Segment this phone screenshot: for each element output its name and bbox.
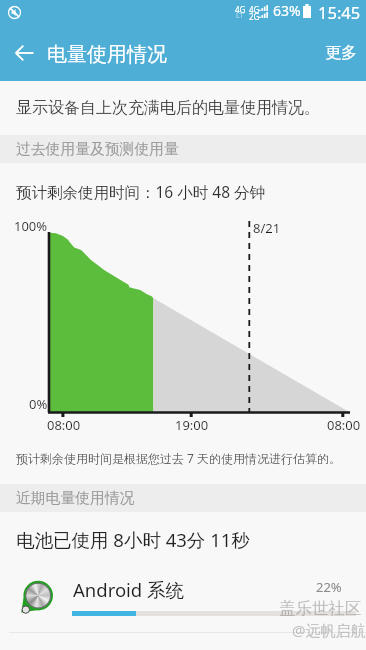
staticText: 4G (235, 4, 246, 15)
staticText: 显示设备自上次充满电后的电量使用情况。 (16, 98, 320, 118)
staticText: 100% (14, 217, 48, 235)
staticText: 盖乐世社区 (279, 598, 362, 619)
button[interactable]: Android 系统 (0, 565, 366, 633)
staticText: 0% (29, 395, 48, 413)
staticText: 更多 (325, 43, 357, 63)
button[interactable]: 更多 (314, 29, 366, 76)
button[interactable]: Back (1, 29, 48, 76)
staticText: 19:00 (175, 416, 209, 434)
staticText: 预计剩余使用时间是根据您过去 7 天的使用情况进行估算的。 (16, 450, 342, 466)
staticText: 电量使用情况 (47, 42, 167, 67)
staticText: 电池已使用 8小时 43分 11秒 (16, 527, 250, 552)
staticText: 2G (249, 11, 260, 22)
staticText: 22% (316, 578, 342, 596)
staticText: @远帆启航 (292, 620, 366, 640)
staticText: 4G (249, 4, 260, 15)
staticText: 8/21 (253, 219, 281, 237)
staticText: 近期电量使用情况 (16, 489, 135, 508)
staticText: 08:00 (47, 416, 81, 434)
staticText: 过去使用量及预测使用量 (16, 140, 179, 159)
other: Sound off (8, 6, 21, 19)
staticText: 预计剩余使用时间：16 小时 48 分钟 (16, 181, 266, 202)
staticText: 08:00 (327, 416, 361, 434)
staticText: 15:45 (318, 1, 361, 23)
staticText: 63% (273, 1, 301, 20)
staticText: Android 系统 (73, 577, 185, 602)
staticText: LT (236, 11, 244, 21)
